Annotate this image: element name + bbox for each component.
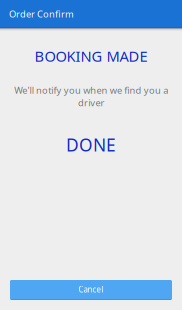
staticText: Cancel — [78, 284, 103, 295]
staticText: We'll notify you when we find you a driv… — [14, 84, 168, 109]
staticText: DONE — [66, 133, 116, 156]
staticText: BOOKING MADE — [34, 46, 147, 66]
button[interactable]: DONE — [56, 136, 126, 154]
staticText: Order Confirm — [9, 8, 74, 20]
button[interactable]: Cancel — [10, 280, 172, 300]
